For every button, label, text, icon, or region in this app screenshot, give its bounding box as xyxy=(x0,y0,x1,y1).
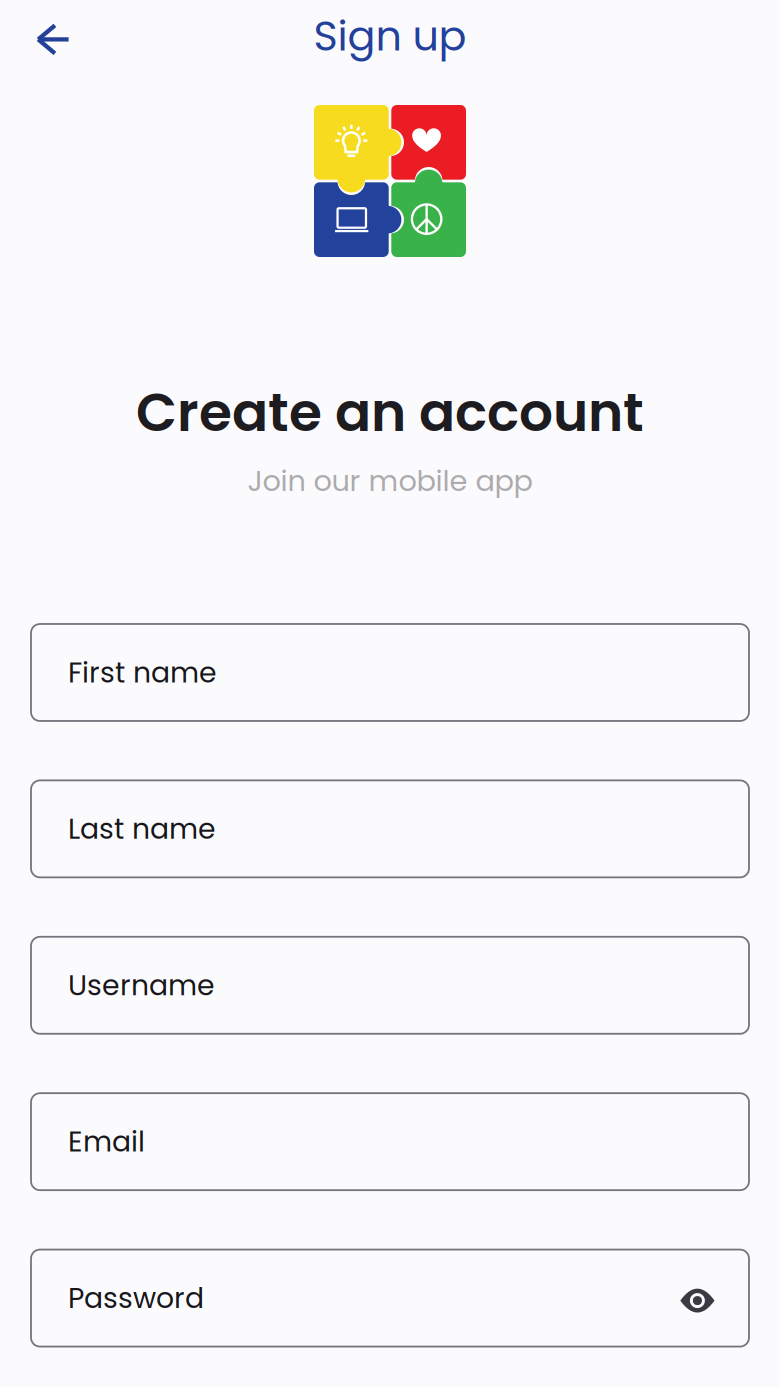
staticText: Username xyxy=(68,965,215,1005)
staticText: Password xyxy=(68,1278,204,1318)
button[interactable]: Show password xyxy=(678,1287,712,1309)
button[interactable]: Email xyxy=(31,1093,749,1190)
staticText: Last name xyxy=(68,809,216,849)
staticText: Email xyxy=(68,1122,145,1161)
button[interactable]: Username xyxy=(31,937,749,1034)
staticText: Create an account xyxy=(136,375,644,450)
button[interactable]: Last name xyxy=(31,780,749,877)
button[interactable]: Back xyxy=(26,8,82,64)
staticText: Join our mobile app xyxy=(247,461,532,501)
button[interactable]: First name xyxy=(31,624,749,721)
button[interactable]: Password xyxy=(31,1250,749,1347)
staticText: First name xyxy=(68,653,217,692)
staticText: Sign up xyxy=(313,7,466,65)
